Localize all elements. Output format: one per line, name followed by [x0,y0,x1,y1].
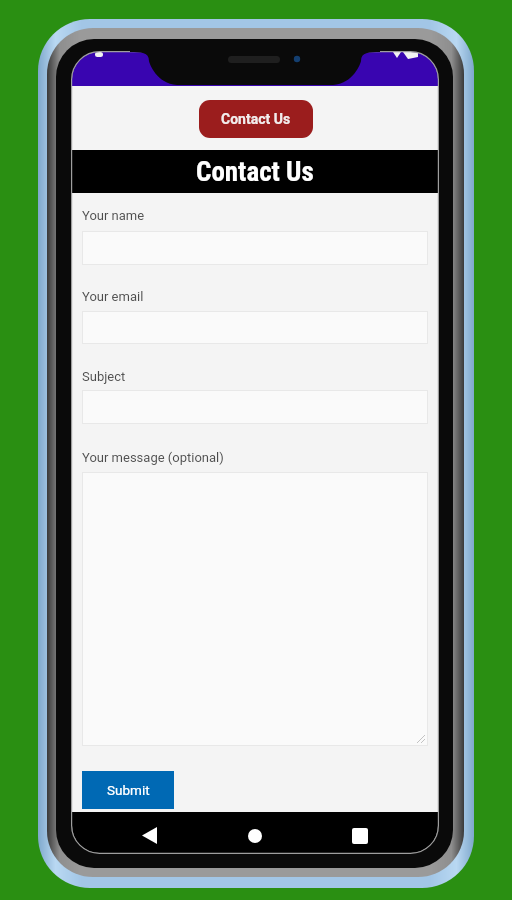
staticText: Submit [107,782,150,798]
button[interactable]: Home [227,815,283,853]
button[interactable]: Contact Us [199,100,313,138]
button[interactable]: Submit [82,771,174,809]
button[interactable]: Back [121,815,177,853]
button[interactable] [82,311,428,344]
staticText: Contact Us [221,111,291,127]
staticText: Your message (optional) [82,450,224,465]
button[interactable] [82,390,428,424]
button[interactable]: Recent apps [332,815,388,853]
staticText: Subject [82,369,126,384]
staticText: Contact Us [196,156,314,188]
staticText: Your name [82,208,145,223]
button[interactable] [82,231,428,265]
staticText: Your email [82,289,144,304]
